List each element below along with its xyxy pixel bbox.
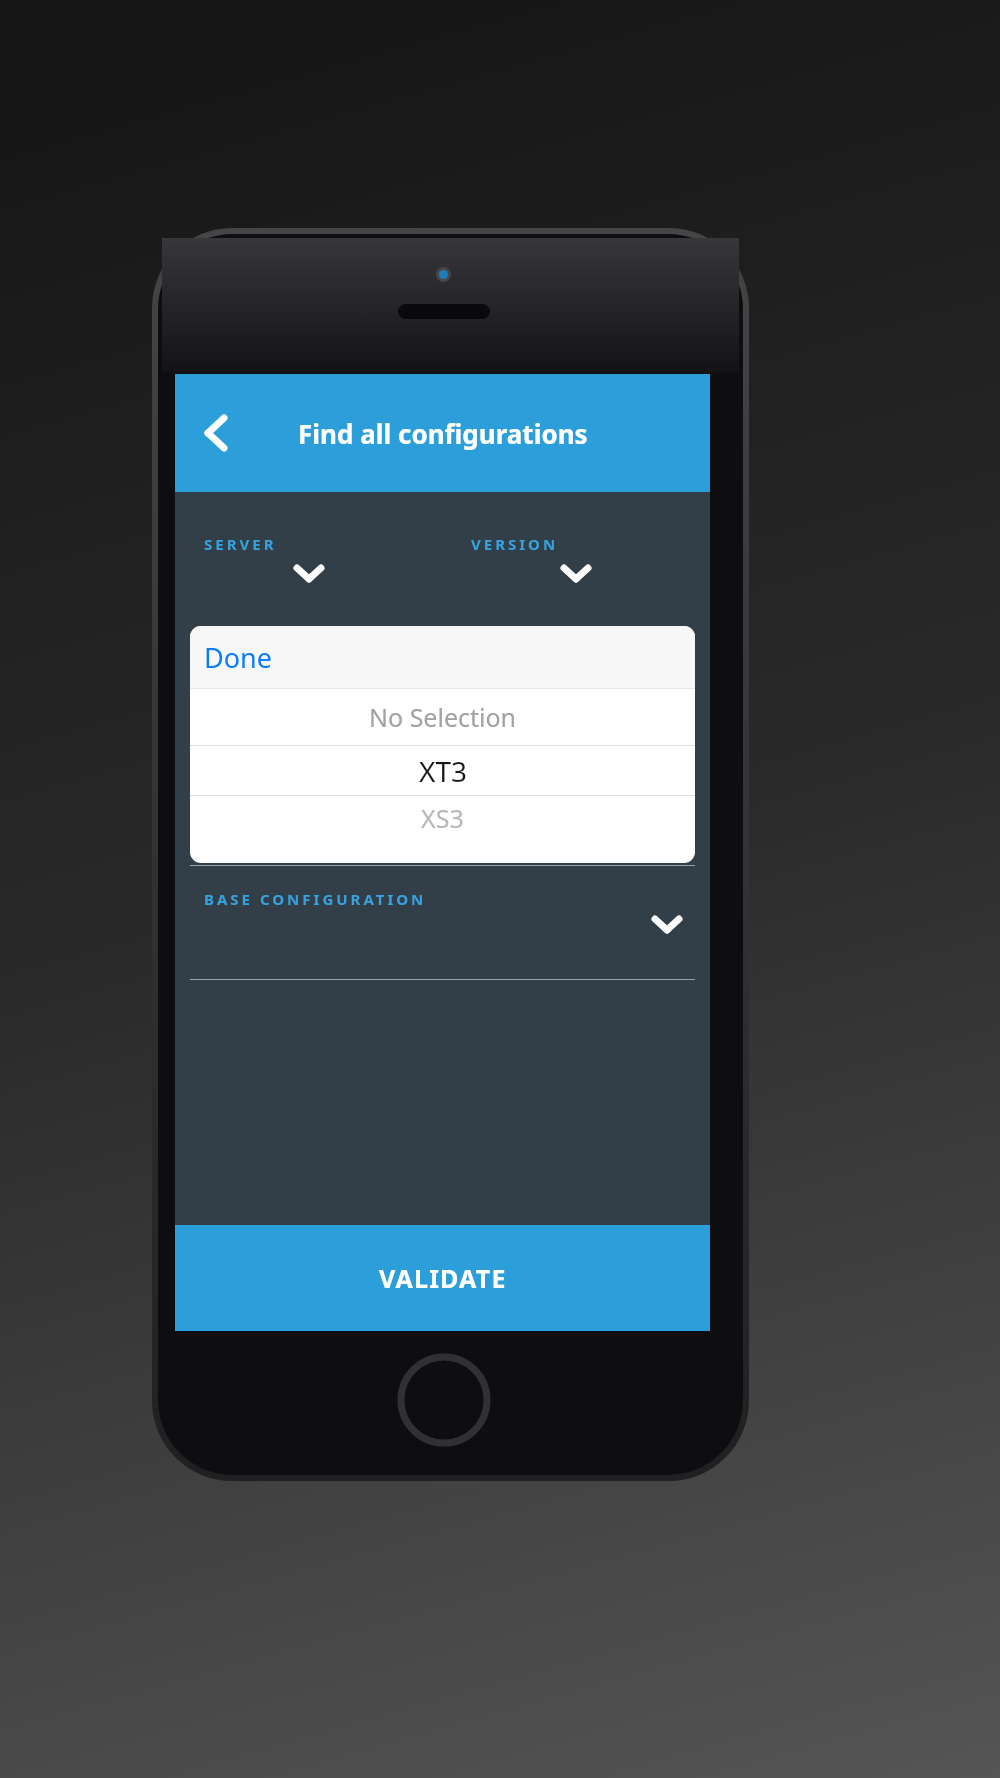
button[interactable]: BASE CONFIGURATION [175,866,710,980]
button[interactable]: Done [190,626,695,688]
staticText: RESOLUTION [204,661,331,681]
button[interactable]: SERVER MODEL [175,752,710,866]
staticText: XT3 [419,752,467,790]
staticText: VERSION [471,534,559,554]
button[interactable]: Back [185,402,247,464]
button[interactable]: XS3 [190,796,695,840]
button[interactable]: RESOLUTION [175,638,710,752]
staticText: BASE CONFIGURATION [204,889,427,909]
staticText: VALIDATE [379,1261,507,1295]
staticText: XS3 [421,801,464,835]
staticText: Done [204,639,272,676]
staticText: SERVER [204,534,277,554]
button[interactable]: VERSION [442,492,710,638]
button[interactable]: XT3 [190,746,695,795]
button[interactable]: No Selection [190,689,695,745]
button[interactable]: VALIDATE [175,1225,710,1331]
staticText: No Selection [369,700,517,734]
staticText: Find all configurations [298,416,588,451]
button[interactable]: SERVER [175,492,442,638]
